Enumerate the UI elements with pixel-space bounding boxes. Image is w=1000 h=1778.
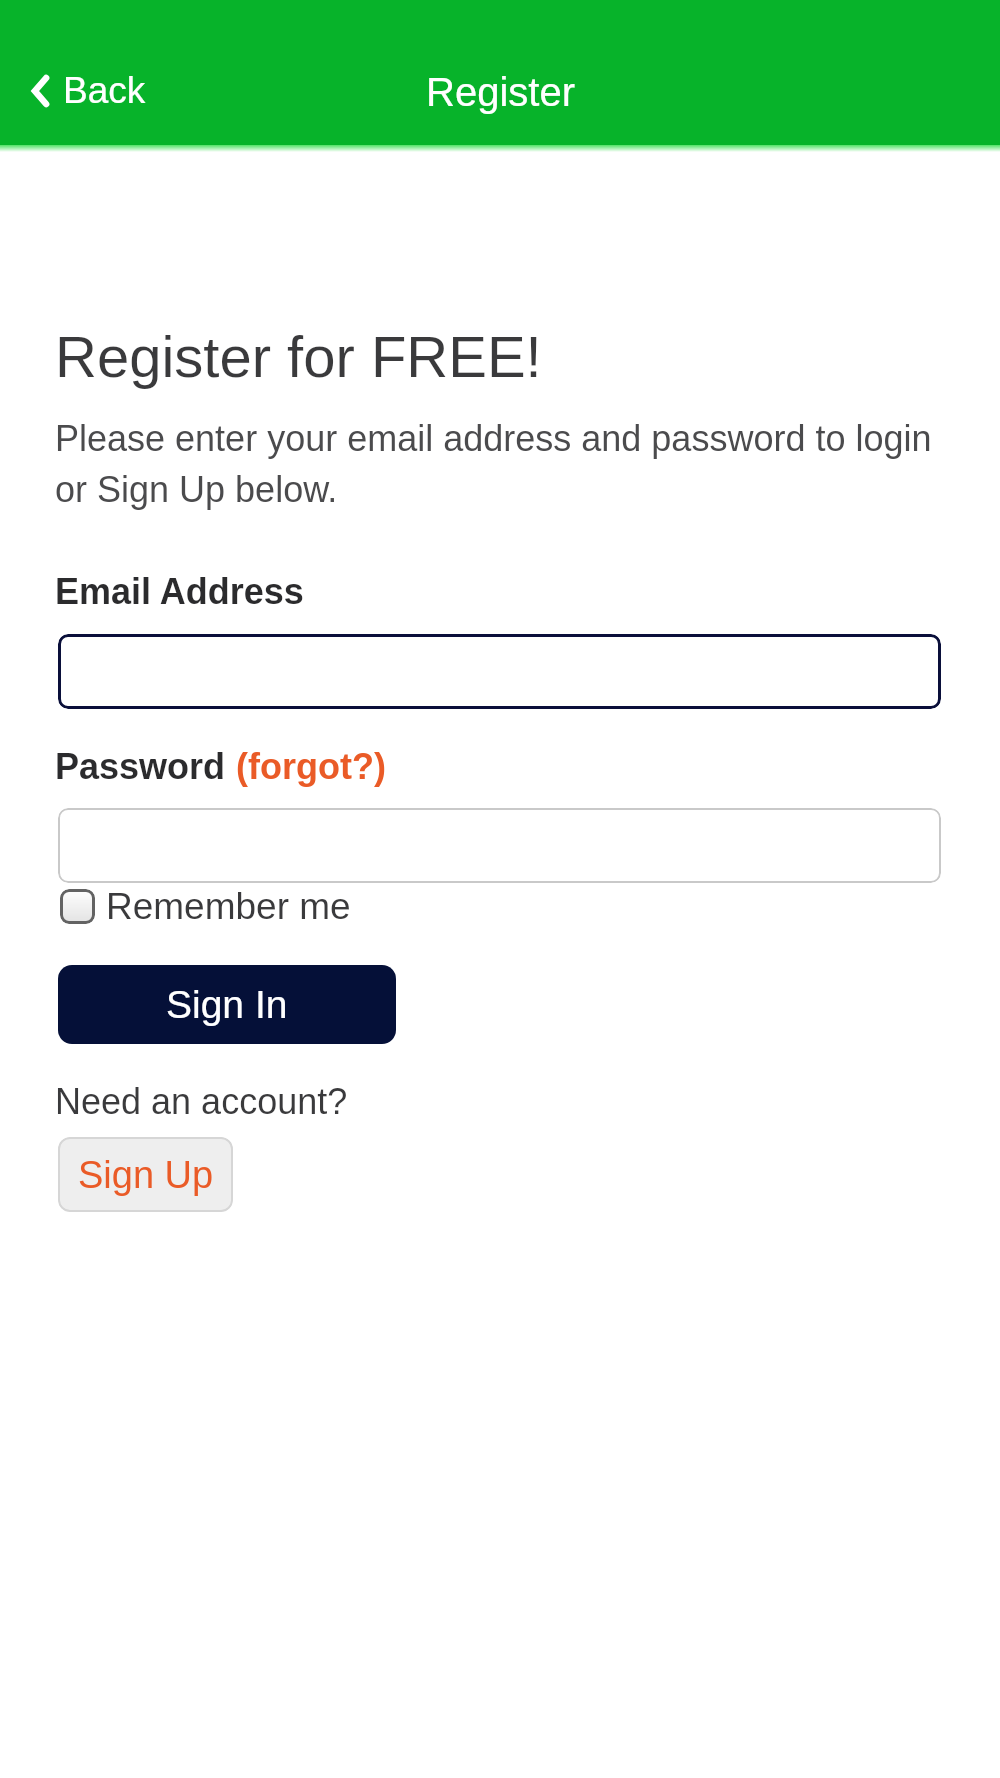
button[interactable]: Sign Up (58, 1137, 233, 1212)
staticText: Sign In (166, 983, 288, 1027)
staticText: Please enter your email address and pass… (55, 418, 941, 510)
button[interactable] (58, 808, 941, 883)
staticText: Back (63, 70, 146, 111)
button[interactable] (58, 634, 941, 709)
button[interactable]: Back (33, 70, 146, 111)
staticText: Register for FREE! (55, 324, 542, 389)
button[interactable]: Remember me (60, 886, 351, 927)
staticText: Remember me (106, 886, 351, 927)
staticText: Sign Up (78, 1154, 214, 1196)
button[interactable]: (forgot?) (236, 746, 386, 786)
button[interactable]: Sign In (58, 965, 396, 1044)
staticText: Need an account? (55, 1081, 348, 1121)
staticText: Password (55, 746, 236, 786)
staticText: Register (426, 70, 575, 115)
staticText: Email Address (55, 571, 304, 611)
